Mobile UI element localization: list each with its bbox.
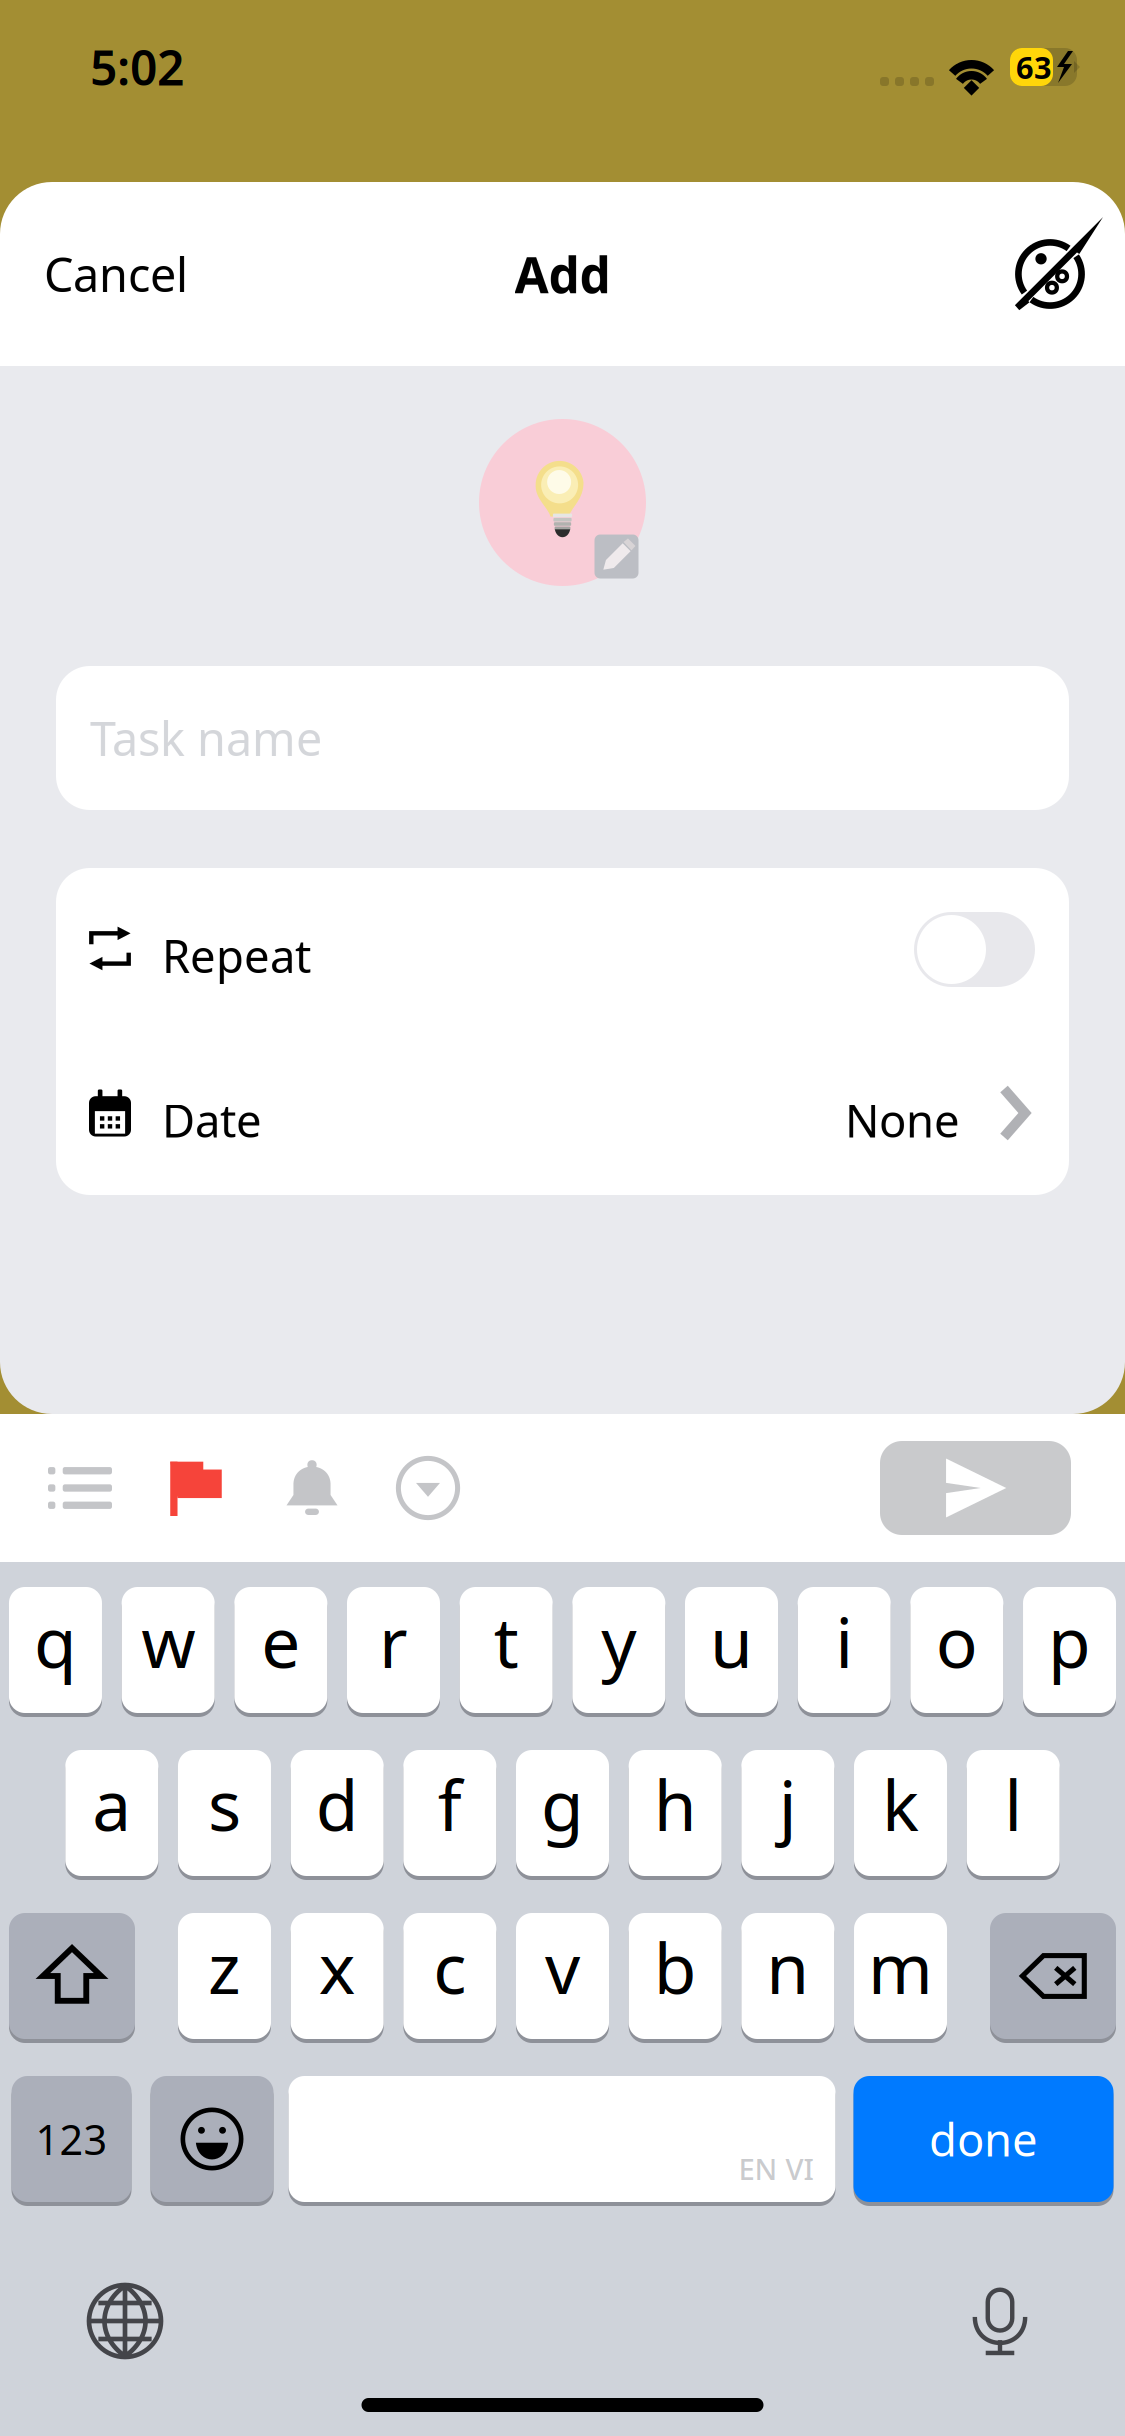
- button[interactable]: Priority: [138, 1430, 254, 1546]
- button[interactable]: a: [65, 1748, 158, 1878]
- staticText: s: [208, 1758, 241, 1850]
- staticText: Add: [514, 241, 610, 307]
- staticText: done: [929, 2109, 1038, 2169]
- staticText: c: [433, 1921, 466, 2013]
- staticText: z: [208, 1921, 241, 2013]
- staticText: m: [868, 1921, 933, 2013]
- button[interactable]: More options: [370, 1430, 486, 1546]
- staticText: q: [34, 1595, 77, 1687]
- button[interactable]: Delete: [990, 1911, 1116, 2041]
- button[interactable]: Emoji: [150, 2074, 273, 2204]
- button[interactable]: done: [853, 2074, 1113, 2204]
- staticText: h: [654, 1758, 697, 1850]
- staticText: Date: [162, 1090, 262, 1150]
- staticText: w: [141, 1595, 195, 1687]
- staticText: 5:02: [90, 35, 184, 99]
- button[interactable]: j: [741, 1748, 834, 1878]
- button[interactable]: i: [798, 1585, 891, 1715]
- staticText: l: [1004, 1758, 1022, 1850]
- staticText: p: [1048, 1595, 1091, 1687]
- staticText: 63: [1016, 47, 1052, 87]
- button[interactable]: m: [854, 1911, 947, 2041]
- staticText: None: [845, 1090, 960, 1150]
- button[interactable]: l: [967, 1748, 1060, 1878]
- button[interactable]: z: [178, 1911, 271, 2041]
- button[interactable]: Next keyboard: [70, 2266, 180, 2376]
- staticText: x: [319, 1921, 356, 2013]
- staticText: t: [494, 1595, 519, 1687]
- button[interactable]: v: [516, 1911, 609, 2041]
- button[interactable]: Reminder: [254, 1430, 370, 1546]
- staticText: Repeat: [162, 925, 311, 986]
- button[interactable]: Space: [288, 2074, 835, 2204]
- staticText: k: [882, 1758, 919, 1850]
- button[interactable]: Send: [880, 1441, 1071, 1535]
- staticText: b: [654, 1921, 697, 2013]
- staticText: d: [316, 1758, 359, 1850]
- button[interactable]: c: [403, 1911, 496, 2041]
- button[interactable]: b: [629, 1911, 722, 2041]
- staticText: j: [779, 1758, 797, 1850]
- staticText: f: [438, 1758, 462, 1850]
- button[interactable]: o: [910, 1585, 1003, 1715]
- button[interactable]: y: [572, 1585, 665, 1715]
- button[interactable]: Theme: [977, 201, 1125, 347]
- staticText: i: [835, 1595, 853, 1687]
- button[interactable]: Subtasks: [22, 1430, 138, 1546]
- button[interactable]: p: [1023, 1585, 1116, 1715]
- button[interactable]: d: [291, 1748, 384, 1878]
- button[interactable]: x: [291, 1911, 384, 2041]
- staticText: e: [261, 1595, 300, 1687]
- button[interactable]: e: [234, 1585, 327, 1715]
- staticText: a: [92, 1758, 131, 1850]
- staticText: Task name: [90, 707, 322, 769]
- staticText: u: [710, 1595, 753, 1687]
- button[interactable]: Numbers: [11, 2074, 131, 2204]
- staticText: n: [766, 1921, 809, 2013]
- button[interactable]: Cancel: [0, 209, 222, 339]
- button[interactable]: h: [629, 1748, 722, 1878]
- button[interactable]: w: [122, 1585, 215, 1715]
- staticText: v: [545, 1921, 580, 2013]
- button[interactable]: k: [854, 1748, 947, 1878]
- staticText: r: [379, 1595, 408, 1687]
- staticText: EN VI: [738, 2149, 813, 2188]
- staticText: o: [936, 1595, 978, 1687]
- button[interactable]: Shift: [9, 1911, 135, 2041]
- button[interactable]: f: [403, 1748, 496, 1878]
- button[interactable]: Dictation: [945, 2266, 1055, 2376]
- staticText: Cancel: [44, 243, 188, 305]
- staticText: y: [601, 1595, 636, 1687]
- button[interactable]: g: [516, 1748, 609, 1878]
- staticText: g: [541, 1758, 584, 1850]
- button[interactable]: Date: [56, 1031, 1069, 1195]
- button[interactable]: q: [9, 1585, 102, 1715]
- button[interactable]: r: [347, 1585, 440, 1715]
- button[interactable]: t: [460, 1585, 553, 1715]
- button[interactable]: Repeat: [914, 912, 1035, 987]
- staticText: 123: [35, 2112, 107, 2166]
- button[interactable]: n: [741, 1911, 834, 2041]
- button[interactable]: u: [685, 1585, 778, 1715]
- button[interactable]: s: [178, 1748, 271, 1878]
